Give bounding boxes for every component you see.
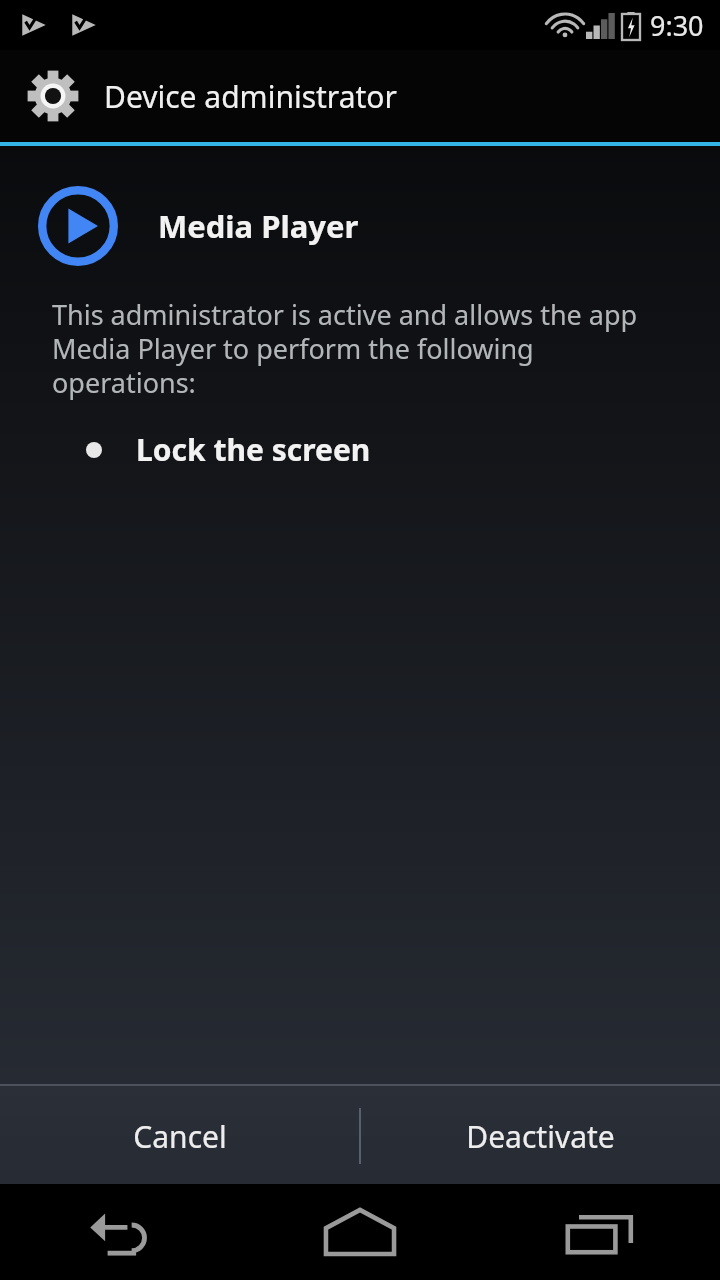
staticText: Device administrator xyxy=(104,76,397,117)
button[interactable]: Home xyxy=(240,1184,480,1280)
staticText: 9:30 xyxy=(650,7,704,44)
button[interactable]: Recent apps xyxy=(480,1184,720,1280)
staticText: Cancel xyxy=(133,1116,227,1157)
button[interactable]: Device administrator xyxy=(0,50,720,142)
button[interactable]: Deactivate xyxy=(361,1086,720,1186)
staticText: This administrator is active and allows … xyxy=(52,296,660,401)
staticText: Deactivate xyxy=(466,1116,615,1157)
button[interactable]: Back xyxy=(0,1184,240,1280)
other: Media Player icon xyxy=(38,186,118,266)
button[interactable]: Cancel xyxy=(0,1086,359,1186)
staticText: Media Player xyxy=(158,205,359,247)
staticText: Lock the screen xyxy=(136,429,371,470)
